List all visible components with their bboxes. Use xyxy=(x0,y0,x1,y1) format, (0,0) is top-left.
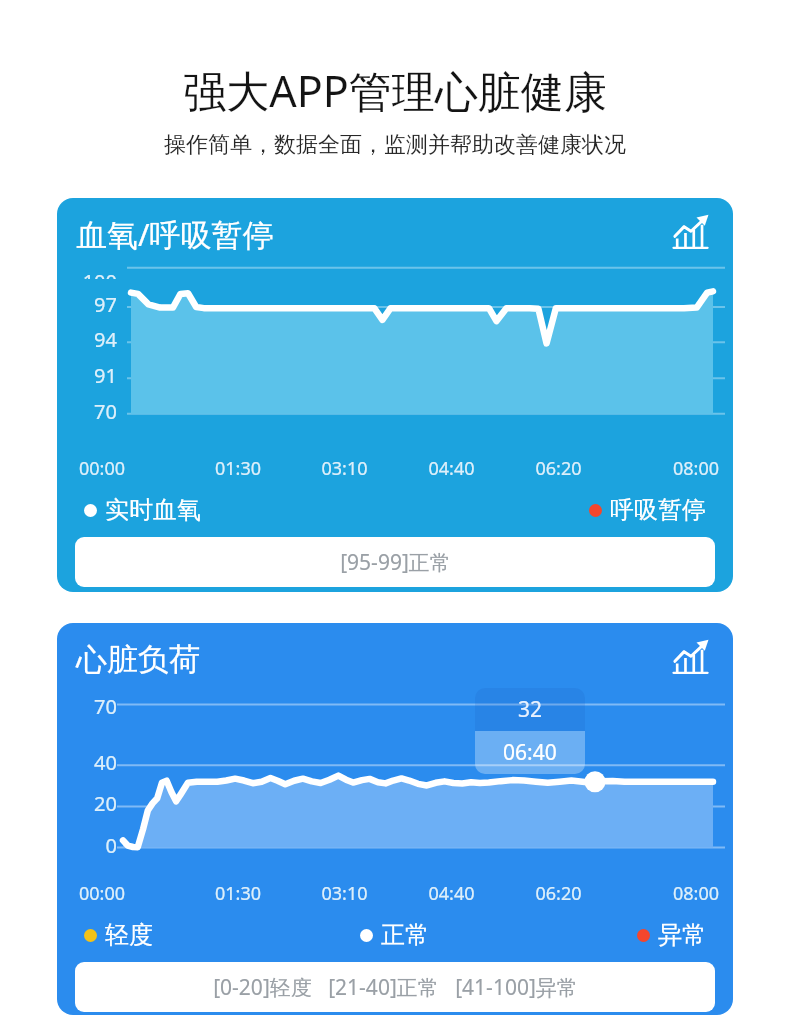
staticText: 轻度 xyxy=(105,920,153,950)
staticText: 06:20 xyxy=(505,881,612,906)
staticText: 00:00 xyxy=(79,456,185,481)
staticText: [0-20]轻度 [21-40]正常 [41-100]异常 xyxy=(213,973,578,1002)
staticText: 20 xyxy=(57,790,117,817)
staticText: 异常 xyxy=(658,920,706,950)
staticText: 心脏负荷 xyxy=(76,640,200,679)
button[interactable]: [95-99]正常 xyxy=(75,537,715,587)
staticText: 97 xyxy=(57,291,117,318)
staticText: 03:10 xyxy=(291,881,398,906)
staticText: 40 xyxy=(57,749,117,776)
staticText: 强大APP管理心脏健康 xyxy=(0,61,790,120)
button[interactable]: 实时血氧 xyxy=(84,495,201,525)
staticText: 正常 xyxy=(381,920,429,950)
button[interactable]: 正常 xyxy=(360,920,429,950)
staticText: 04:40 xyxy=(398,456,505,481)
button[interactable]: 血氧/呼吸暂停 xyxy=(57,198,733,592)
staticText: 0 xyxy=(57,832,117,859)
staticText: 100 xyxy=(57,268,117,279)
staticText: 操作简单，数据全面，监测并帮助改善健康状况 xyxy=(0,131,790,159)
button[interactable]: 趋势图表 xyxy=(668,636,714,682)
staticText: 06:40 xyxy=(503,738,557,767)
staticText: 06:20 xyxy=(505,456,612,481)
staticText: 08:00 xyxy=(612,881,719,906)
button[interactable]: 呼吸暂停 xyxy=(589,495,706,525)
button[interactable]: 轻度 xyxy=(84,920,153,950)
button[interactable]: 异常 xyxy=(637,920,706,950)
staticText: 04:40 xyxy=(398,881,505,906)
button[interactable]: [0-20]轻度 [21-40]正常 [41-100]异常 xyxy=(75,962,715,1012)
staticText: 01:30 xyxy=(185,881,291,906)
staticText: 94 xyxy=(57,326,117,353)
staticText: 32 xyxy=(518,695,543,724)
staticText: 血氧/呼吸暂停 xyxy=(76,213,274,255)
staticText: 实时血氧 xyxy=(105,495,201,525)
staticText: 70 xyxy=(57,693,117,716)
staticText: [95-99]正常 xyxy=(340,548,451,577)
staticText: 91 xyxy=(57,362,117,389)
staticText: 08:00 xyxy=(612,456,719,481)
staticText: 03:10 xyxy=(291,456,398,481)
button[interactable]: 趋势图表 xyxy=(668,211,714,257)
staticText: 01:30 xyxy=(185,456,291,481)
staticText: 呼吸暂停 xyxy=(610,495,706,525)
button[interactable]: 心脏负荷 xyxy=(57,623,733,1015)
staticText: 70 xyxy=(57,398,117,425)
staticText: 00:00 xyxy=(79,881,185,906)
